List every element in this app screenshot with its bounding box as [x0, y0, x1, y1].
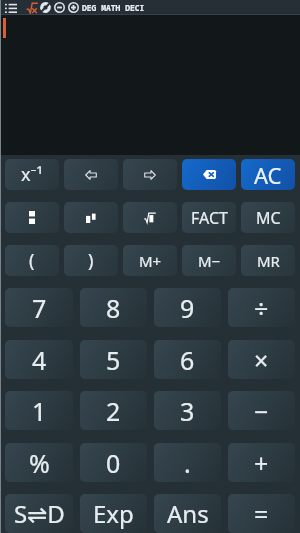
- staticText: M+: [139, 251, 162, 271]
- staticText: 2: [106, 394, 121, 428]
- button[interactable]: 4: [5, 340, 73, 379]
- staticText: Exp: [93, 497, 134, 530]
- staticText: ): [88, 248, 94, 273]
- staticText: ÷: [254, 291, 269, 325]
- button[interactable]: ÷: [228, 288, 295, 327]
- staticText: +: [254, 446, 269, 480]
- staticText: 7: [32, 291, 47, 325]
- button[interactable]: 7: [5, 288, 73, 327]
- staticText: 6: [180, 343, 195, 377]
- staticText: 1: [32, 394, 47, 428]
- staticText: DEG MATH DECI: [82, 2, 145, 13]
- staticText: x⁻¹: [21, 162, 43, 187]
- button[interactable]: 1: [5, 391, 73, 430]
- button[interactable]: 8: [80, 288, 147, 327]
- button[interactable]: Move left: [64, 159, 118, 190]
- staticText: M−: [198, 251, 221, 271]
- button[interactable]: History: [4, 0, 17, 15]
- staticText: FACT: [191, 207, 228, 229]
- staticText: 9: [180, 291, 195, 325]
- button[interactable]: =: [228, 494, 295, 533]
- button[interactable]: 0: [80, 443, 147, 482]
- button[interactable]: Square root: [123, 202, 177, 233]
- button[interactable]: ×: [228, 340, 295, 379]
- staticText: 0: [106, 446, 121, 480]
- button[interactable]: (: [5, 245, 59, 276]
- button[interactable]: Exp: [80, 494, 147, 533]
- staticText: MC: [256, 207, 281, 229]
- staticText: %: [29, 446, 50, 480]
- button[interactable]: %: [5, 443, 73, 482]
- button[interactable]: Move right: [123, 159, 177, 190]
- staticText: =: [254, 497, 269, 531]
- button[interactable]: Zoom in: [67, 0, 79, 15]
- button[interactable]: Power: [64, 202, 118, 233]
- button[interactable]: .: [154, 443, 221, 482]
- button[interactable]: 9: [154, 288, 221, 327]
- button[interactable]: x⁻¹: [5, 159, 59, 190]
- button[interactable]: AC: [241, 159, 295, 190]
- button[interactable]: 3: [154, 391, 221, 430]
- staticText: −: [254, 394, 269, 428]
- staticText: MR: [257, 251, 280, 271]
- button[interactable]: Delete: [182, 159, 236, 190]
- staticText: ×: [254, 343, 269, 377]
- button[interactable]: MR: [241, 245, 295, 276]
- staticText: 4: [32, 343, 47, 377]
- button[interactable]: Refresh: [39, 0, 51, 15]
- staticText: (: [29, 248, 35, 273]
- button[interactable]: +: [228, 443, 295, 482]
- button[interactable]: Fraction: [5, 202, 59, 233]
- button[interactable]: FACT: [182, 202, 236, 233]
- button[interactable]: 6: [154, 340, 221, 379]
- button[interactable]: 5: [80, 340, 147, 379]
- button[interactable]: 2: [80, 391, 147, 430]
- button[interactable]: Ans: [154, 494, 221, 533]
- staticText: Ans: [167, 497, 209, 530]
- button[interactable]: S⇌D: [5, 494, 73, 533]
- staticText: 3: [180, 394, 195, 428]
- button[interactable]: −: [228, 391, 295, 430]
- button[interactable]: Functions: [26, 0, 38, 15]
- staticText: .: [184, 446, 191, 480]
- button[interactable]: ): [64, 245, 118, 276]
- button[interactable]: Zoom out: [53, 0, 65, 15]
- staticText: 5: [106, 343, 121, 377]
- button[interactable]: M−: [182, 245, 236, 276]
- button[interactable]: M+: [123, 245, 177, 276]
- staticText: S⇌D: [14, 497, 65, 530]
- staticText: 8: [106, 291, 121, 325]
- staticText: AC: [254, 160, 282, 190]
- button[interactable]: MC: [241, 202, 295, 233]
